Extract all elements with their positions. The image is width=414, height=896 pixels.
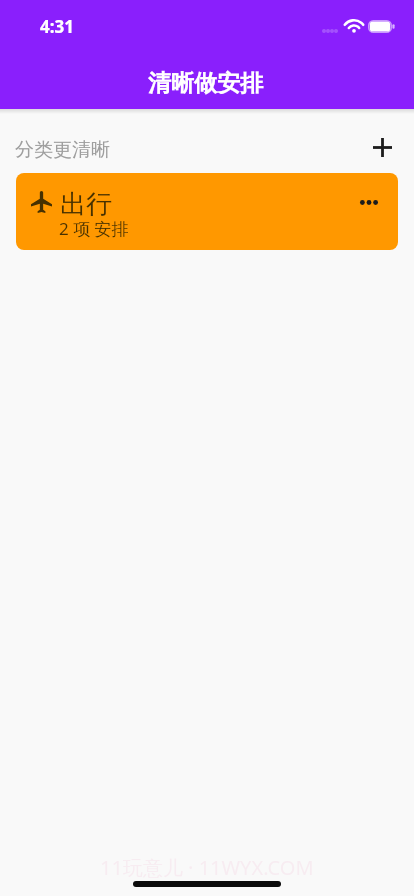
button[interactable]: More options <box>349 182 389 222</box>
staticText: 分类更清晰 <box>15 138 110 162</box>
staticText: 清晰做安排 <box>148 69 263 98</box>
staticText: 2 项 安排 <box>59 217 129 240</box>
button[interactable]: 出行 <box>16 173 398 250</box>
staticText: 4:31 <box>40 15 74 38</box>
staticText: 出行 <box>60 188 112 221</box>
staticText: 11玩意儿 · 11WYX.COM <box>100 854 314 881</box>
button[interactable]: Add category <box>362 127 402 167</box>
